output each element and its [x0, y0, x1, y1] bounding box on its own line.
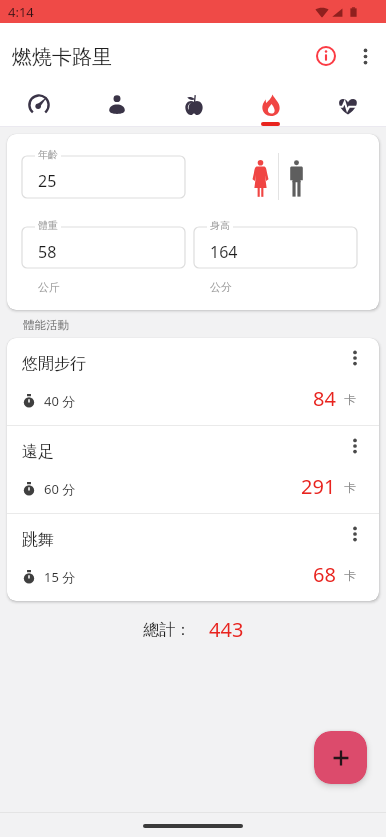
button[interactable]: Food — [155, 79, 232, 127]
staticText: 燃燒卡路里 — [12, 45, 112, 70]
staticText: 58 — [38, 241, 57, 263]
button[interactable]: Dashboard — [0, 79, 78, 127]
button[interactable]: More options — [345, 36, 385, 76]
button[interactable]: Options — [337, 428, 373, 464]
staticText: 84 — [313, 385, 336, 412]
staticText: 291 — [301, 473, 336, 500]
staticText: 443 — [209, 616, 244, 643]
button[interactable]: 遠足 — [7, 426, 379, 513]
button[interactable]: Options — [337, 340, 373, 376]
staticText: 卡 — [344, 480, 356, 495]
staticText: 總計： — [143, 620, 191, 640]
button[interactable]: Profile — [78, 79, 155, 127]
staticText: 公分 — [210, 280, 232, 294]
button[interactable]: Info — [304, 34, 348, 78]
staticText: 遠足 — [22, 442, 54, 462]
button[interactable]: Add — [314, 731, 367, 784]
button[interactable]: Options — [337, 516, 373, 552]
button[interactable]: Male — [274, 156, 318, 200]
button[interactable]: Heart rate — [309, 79, 386, 127]
staticText: 悠閒步行 — [22, 354, 86, 374]
staticText: 卡 — [344, 392, 356, 407]
staticText: 身高 — [210, 219, 230, 232]
staticText: 卡 — [344, 568, 356, 583]
staticText: 體重 — [38, 219, 58, 232]
button[interactable]: Calories burned — [232, 79, 309, 127]
staticText: 跳舞 — [22, 530, 54, 550]
staticText: 15 分 — [44, 568, 76, 586]
button[interactable]: 悠閒步行 — [7, 338, 379, 425]
staticText: 60 分 — [44, 480, 76, 498]
staticText: 40 分 — [44, 392, 76, 410]
button[interactable]: 跳舞 — [7, 514, 379, 601]
staticText: 164 — [210, 241, 238, 263]
staticText: 4:14 — [8, 3, 34, 21]
staticText: 25 — [38, 170, 57, 192]
staticText: 68 — [313, 561, 336, 588]
button[interactable]: Female — [238, 156, 282, 200]
staticText: 公斤 — [38, 280, 60, 294]
staticText: 年齡 — [38, 148, 58, 161]
staticText: 體能活動 — [23, 318, 69, 332]
